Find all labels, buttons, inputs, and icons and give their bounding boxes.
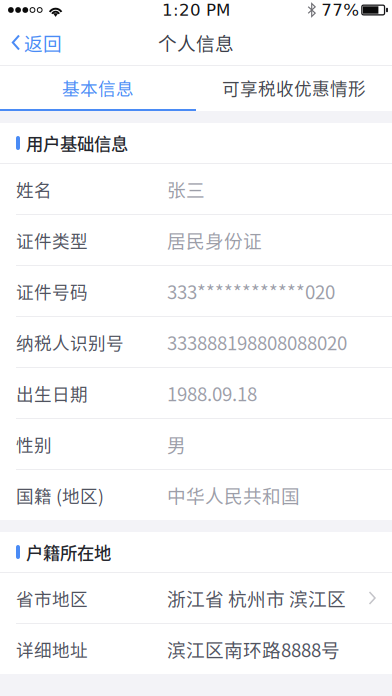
button[interactable]: 纳税人识别号 [0,317,392,367]
staticText: 1988.09.18 [167,379,257,406]
staticText: 基本信息 [62,75,134,100]
button[interactable]: 可享税收优惠情形 [196,66,392,109]
button[interactable]: 省市地区 [0,573,392,623]
staticText: 证件号码 [16,278,88,304]
staticText: 纳税人识别号 [16,329,124,355]
staticText: 国籍 (地区) [16,482,104,508]
staticText: 姓名 [16,176,52,202]
staticText: 户籍所在地 [26,539,111,565]
staticText: 1:20 PM [162,0,230,20]
staticText: 333888198808088020 [167,328,347,355]
staticText: 浙江省 杭州市 滨江区 [167,584,346,611]
staticText: 张三 [167,175,205,202]
button[interactable]: 出生日期 [0,368,392,418]
staticText: 用户基础信息 [26,130,128,156]
staticText: 出生日期 [16,380,88,406]
staticText: 男 [167,430,186,457]
staticText: 详细地址 [16,636,88,662]
staticText: 333************020 [167,277,335,304]
staticText: 省市地区 [16,585,88,611]
staticText: 居民身份证 [167,226,262,253]
staticText: 返回 [24,29,62,56]
button[interactable]: 性别 [0,419,392,469]
staticText: 77% [321,0,359,20]
button[interactable]: 证件类型 [0,215,392,265]
button[interactable]: 基本信息 [0,66,196,109]
staticText: 中华人民共和国 [167,481,300,508]
button[interactable]: 姓名 [0,164,392,214]
button[interactable]: 返回 [0,20,72,64]
button[interactable]: 证件号码 [0,266,392,316]
staticText: 性别 [16,431,52,457]
staticText: 可享税收优惠情形 [222,75,366,100]
button[interactable]: 国籍 (地区) [0,470,392,520]
button[interactable]: 详细地址 [0,624,392,674]
staticText: 证件类型 [16,227,88,253]
staticText: 个人信息 [158,29,234,56]
staticText: 滨江区南环路8888号 [167,635,340,662]
